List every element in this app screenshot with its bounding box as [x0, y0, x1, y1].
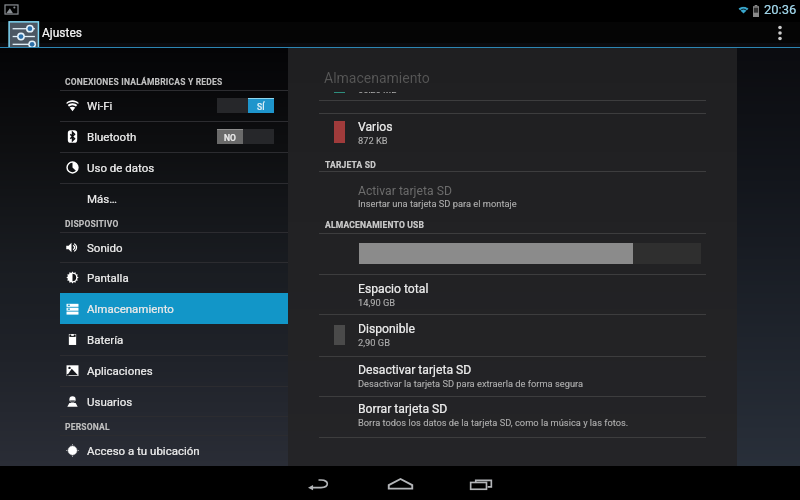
staticText: Almacenamiento — [87, 302, 174, 315]
button[interactable]: Más opciones — [765, 20, 795, 46]
staticText: Borrar tarjeta SD — [358, 402, 448, 416]
staticText: Activar tarjeta SD — [358, 184, 452, 198]
staticText: Más… — [87, 192, 117, 205]
staticText: SÍ — [257, 102, 265, 112]
staticText: CONEXIONES INALÁMBRICAS Y REDES — [65, 77, 223, 87]
button[interactable] — [288, 402, 737, 442]
staticText: 66,26 MB — [358, 92, 397, 93]
staticText: NO — [224, 133, 236, 143]
button[interactable]: Atrás — [296, 466, 340, 500]
staticText: Desactivar tarjeta SD — [358, 363, 472, 377]
staticText: Uso de datos — [87, 161, 155, 174]
staticText: Bluetooth — [87, 130, 137, 143]
button[interactable]: Aplicaciones recientes — [459, 466, 503, 500]
staticText: Insertar una tarjeta SD para el montaje — [358, 198, 517, 209]
button[interactable]: Wi-Fi — [0, 90, 288, 121]
staticText: Pantalla — [87, 271, 129, 284]
staticText: DISPOSITIVO — [65, 219, 119, 229]
staticText: TARJETA SD — [325, 160, 376, 170]
button[interactable]: Usuarios — [0, 386, 288, 416]
staticText: Acceso a tu ubicación — [87, 444, 200, 457]
button[interactable]: Uso de datos — [0, 152, 288, 183]
button[interactable] — [288, 282, 737, 322]
staticText: Ajustes — [42, 26, 82, 40]
button[interactable] — [288, 363, 737, 403]
button[interactable]: Ajustes — [6, 20, 38, 46]
staticText: Sonido — [87, 241, 123, 254]
staticText: 2,90 GB — [358, 337, 390, 348]
button[interactable]: Acceso a tu ubicación — [0, 435, 288, 466]
staticText: Almacenamiento — [324, 70, 430, 86]
button[interactable]: Más… — [0, 183, 288, 214]
staticText: Borra todos los datos de la tarjeta SD, … — [358, 417, 629, 428]
button[interactable]: Pantalla — [0, 262, 288, 293]
staticText: ALMACENAMIENTO USB — [325, 220, 425, 230]
button[interactable] — [288, 322, 737, 362]
staticText: 20:36 — [764, 2, 797, 17]
staticText: 14,90 GB — [358, 297, 396, 308]
button[interactable]: Almacenamiento — [60, 293, 288, 324]
button[interactable]: Batería — [0, 324, 288, 355]
staticText: Desactivar la tarjeta SD para extraerla … — [358, 378, 584, 389]
staticText: 872 KB — [358, 135, 388, 146]
staticText: Usuarios — [87, 395, 133, 408]
staticText: Batería — [87, 333, 124, 346]
button[interactable]: Sonido — [0, 232, 288, 262]
staticText: Aplicaciones — [87, 364, 153, 377]
button[interactable]: Inicio — [378, 466, 422, 500]
staticText: PERSONAL — [65, 422, 110, 432]
staticText: Wi-Fi — [87, 99, 113, 112]
staticText: Varios — [358, 120, 393, 134]
staticText: Disponible — [358, 322, 416, 336]
button[interactable]: Aplicaciones — [0, 355, 288, 386]
button[interactable]: Bluetooth — [0, 121, 288, 152]
staticText: Espacio total — [358, 282, 429, 296]
